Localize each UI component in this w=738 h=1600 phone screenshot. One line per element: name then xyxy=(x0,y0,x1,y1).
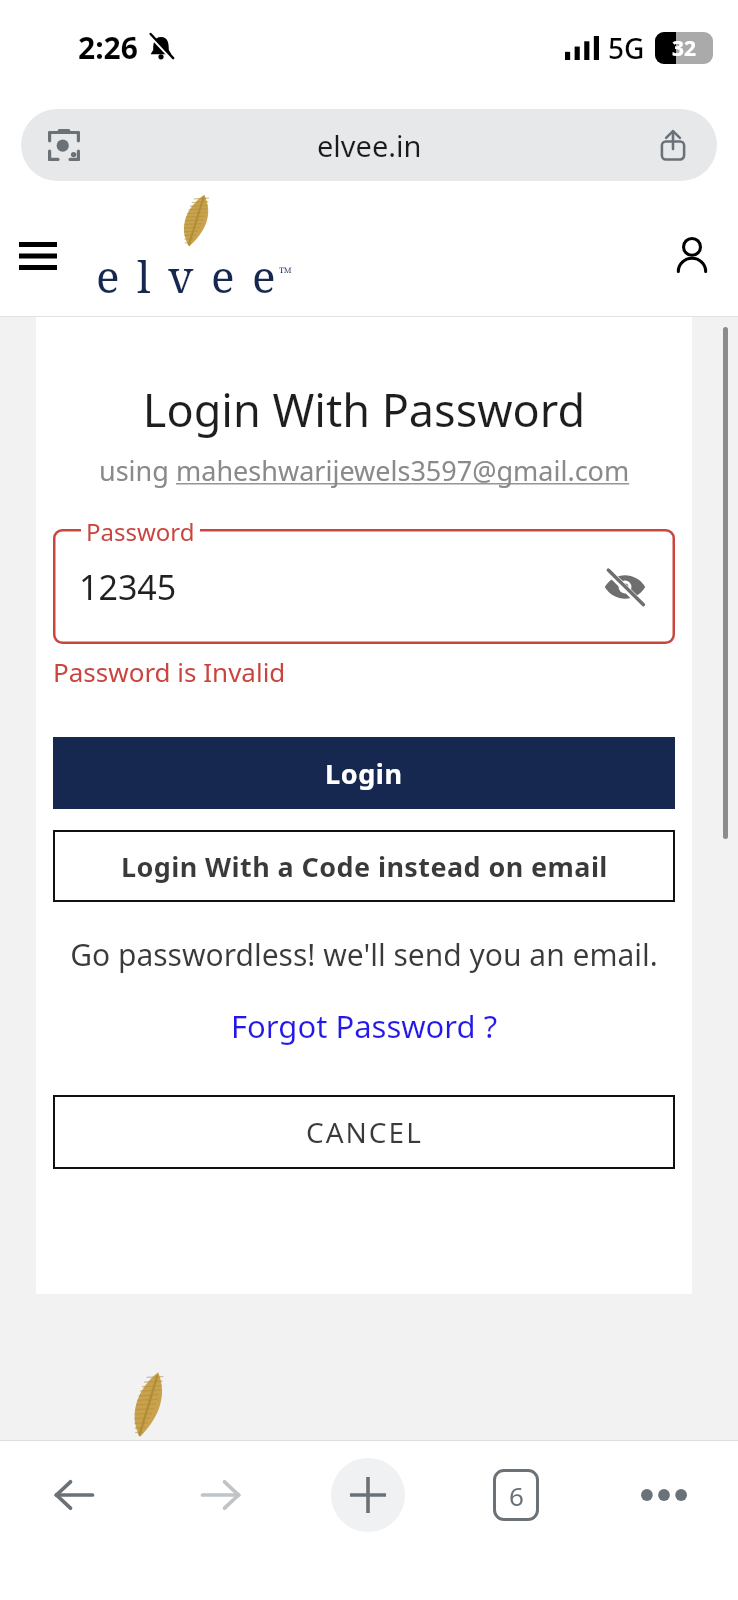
button[interactable]: Forgot Password ? xyxy=(223,1001,506,1051)
staticText: Login With a Code instead on email xyxy=(121,848,608,885)
button[interactable]: Password xyxy=(53,529,675,644)
button[interactable]: Login With a Code instead on email xyxy=(53,830,675,902)
button[interactable]: More options xyxy=(590,1440,738,1550)
button[interactable]: Menu xyxy=(8,226,68,286)
staticText: using xyxy=(99,452,176,489)
staticText: 6 xyxy=(509,1478,524,1513)
staticText: 32 xyxy=(672,34,697,63)
staticText: Go passwordless! we'll send you an email… xyxy=(36,934,692,975)
button[interactable]: Share xyxy=(647,119,699,171)
staticText: CANCEL xyxy=(306,1113,423,1151)
staticText: Login With Password xyxy=(36,379,692,440)
button[interactable]: Hide password xyxy=(597,559,653,615)
staticText: 12345 xyxy=(79,564,177,610)
staticText: Password xyxy=(86,515,195,548)
staticText: Forgot Password ? xyxy=(231,1005,498,1047)
button[interactable]: Search with Lens xyxy=(37,118,91,172)
staticText: ™ xyxy=(279,262,293,284)
staticText: maheshwarijewels3597@gmail.com xyxy=(176,452,630,489)
button[interactable]: Forward xyxy=(147,1440,294,1550)
button[interactable]: Account xyxy=(662,226,722,286)
button[interactable]: CANCEL xyxy=(53,1095,675,1169)
staticText: elvee.in xyxy=(317,126,422,165)
staticText: Login xyxy=(325,755,403,792)
button[interactable]: New tab xyxy=(294,1440,442,1550)
button[interactable]: Login xyxy=(53,737,675,809)
button[interactable]: Search with Lens xyxy=(21,109,717,181)
button[interactable]: Tabs: 6 open xyxy=(442,1440,590,1550)
staticText: 2:26 xyxy=(78,27,138,68)
staticText: Password is Invalid xyxy=(53,654,286,689)
staticText: e l v e e xyxy=(96,246,279,306)
button[interactable]: Back xyxy=(0,1440,147,1550)
staticText: 5G xyxy=(608,29,645,67)
